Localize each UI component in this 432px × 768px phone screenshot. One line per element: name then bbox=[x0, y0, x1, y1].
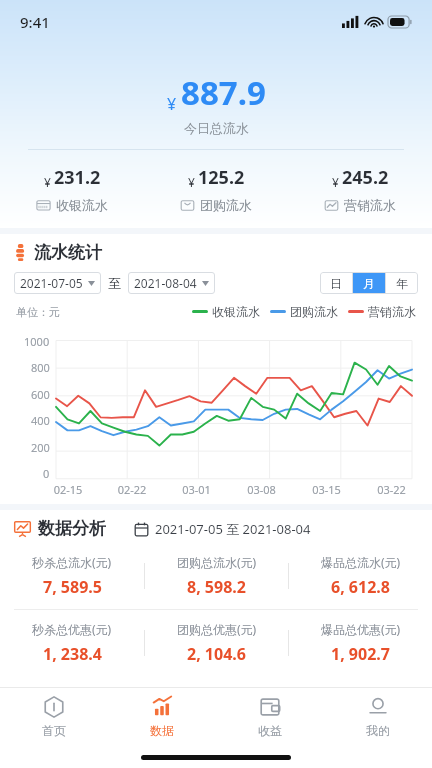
staticText: 125.2 bbox=[198, 165, 245, 190]
button[interactable]: ¥ bbox=[288, 150, 432, 228]
button[interactable]: 数据 bbox=[108, 688, 216, 746]
staticText: 03-22 bbox=[359, 482, 424, 497]
button[interactable]: 月 bbox=[353, 272, 385, 294]
staticText: 我的 bbox=[366, 723, 390, 738]
staticText: 今日总流水 bbox=[184, 120, 249, 136]
button[interactable]: 秒杀总流水(元) bbox=[0, 553, 144, 599]
staticText: 秒杀总流水(元) bbox=[32, 554, 112, 570]
staticText: ¥ bbox=[332, 174, 339, 190]
staticText: 600 bbox=[31, 387, 50, 402]
staticText: 爆品总流水(元) bbox=[321, 554, 401, 570]
staticText: 03-01 bbox=[164, 482, 229, 497]
staticText: 1, 238.4 bbox=[43, 643, 102, 665]
staticText: 收银流水 bbox=[212, 304, 260, 319]
staticText: 秒杀总优惠(元) bbox=[32, 621, 112, 637]
staticText: 800 bbox=[31, 360, 50, 375]
staticText: 团购总流水(元) bbox=[177, 554, 257, 570]
button[interactable]: 爆品总优惠(元) bbox=[289, 620, 432, 666]
staticText: 团购总优惠(元) bbox=[177, 621, 257, 637]
staticText: 887.9 bbox=[181, 70, 266, 115]
staticText: ¥ bbox=[44, 174, 51, 190]
staticText: 231.2 bbox=[54, 165, 101, 190]
staticText: 首页 bbox=[42, 723, 66, 738]
button[interactable]: 日 bbox=[320, 272, 352, 294]
staticText: 9:41 bbox=[20, 12, 50, 32]
staticText: 营销流水 bbox=[344, 197, 396, 213]
button[interactable]: 爆品总流水(元) bbox=[289, 553, 432, 599]
staticText: 1000 bbox=[24, 334, 50, 349]
staticText: 245.2 bbox=[342, 165, 389, 190]
staticText: 团购流水 bbox=[200, 197, 252, 213]
staticText: 02-15 bbox=[36, 482, 100, 497]
button[interactable]: 我的 bbox=[324, 688, 432, 746]
button[interactable]: 首页 bbox=[0, 688, 108, 746]
staticText: 0 bbox=[43, 466, 50, 481]
staticText: 爆品总优惠(元) bbox=[321, 621, 401, 637]
staticText: 7, 589.5 bbox=[43, 576, 102, 598]
staticText: 日 bbox=[330, 276, 342, 291]
staticText: 流水统计 bbox=[34, 242, 102, 263]
button[interactable]: 收益 bbox=[216, 688, 324, 746]
staticText: ¥ bbox=[167, 93, 177, 115]
staticText: 数据 bbox=[150, 723, 174, 738]
staticText: 1, 902.7 bbox=[331, 643, 390, 665]
button[interactable]: 年 bbox=[386, 272, 418, 294]
button[interactable]: 团购总优惠(元) bbox=[145, 620, 288, 666]
staticText: 2021-07-05 bbox=[20, 275, 83, 291]
staticText: 2021-08-04 bbox=[134, 275, 197, 291]
staticText: 至 bbox=[108, 275, 121, 291]
staticText: 400 bbox=[31, 413, 50, 428]
staticText: 02-22 bbox=[100, 482, 164, 497]
button[interactable]: 2021-07-05 至 2021-08-04 bbox=[134, 520, 311, 538]
button[interactable]: ¥ bbox=[144, 150, 288, 228]
staticText: 团购流水 bbox=[290, 304, 338, 319]
staticText: 单位：元 bbox=[16, 305, 60, 319]
staticText: 6, 612.8 bbox=[331, 576, 390, 598]
button[interactable]: 2021-08-04 bbox=[134, 272, 209, 294]
button[interactable]: 秒杀总优惠(元) bbox=[0, 620, 144, 666]
staticText: 03-08 bbox=[229, 482, 294, 497]
staticText: 收益 bbox=[258, 723, 282, 738]
staticText: ¥ bbox=[188, 174, 195, 190]
staticText: 年 bbox=[396, 276, 408, 291]
staticText: 数据分析 bbox=[38, 518, 106, 539]
staticText: 月 bbox=[363, 276, 375, 291]
staticText: 03-15 bbox=[294, 482, 359, 497]
staticText: 2, 104.6 bbox=[187, 643, 246, 665]
button[interactable]: 2021-07-05 bbox=[20, 272, 95, 294]
staticText: 200 bbox=[31, 440, 50, 455]
staticText: 收银流水 bbox=[56, 197, 108, 213]
staticText: 营销流水 bbox=[368, 304, 416, 319]
staticText: 8, 598.2 bbox=[187, 576, 246, 598]
button[interactable]: ¥ bbox=[0, 150, 144, 228]
staticText: 2021-07-05 至 2021-08-04 bbox=[155, 520, 311, 538]
button[interactable]: 团购总流水(元) bbox=[145, 553, 288, 599]
